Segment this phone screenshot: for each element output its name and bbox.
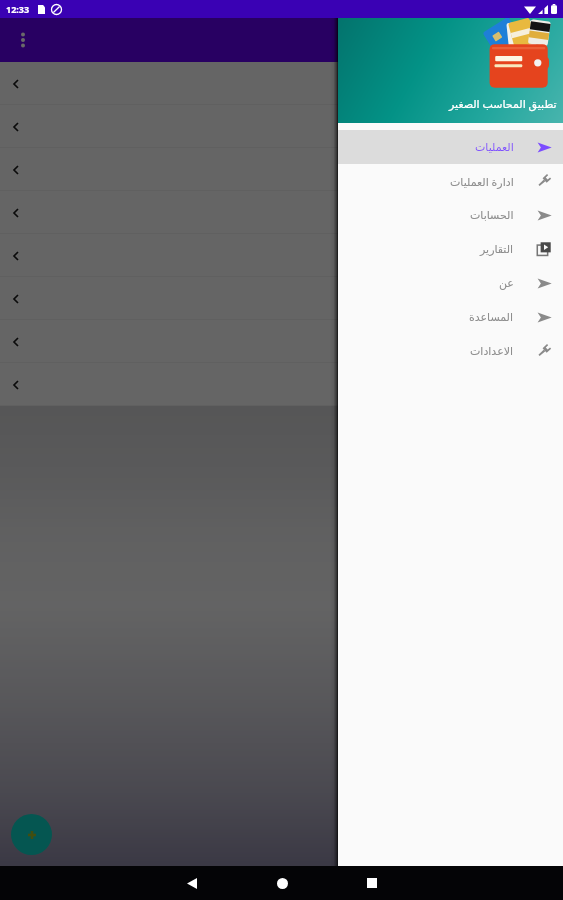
staticText: 12:33: [6, 3, 30, 15]
staticText: تطبيق المحاسب الصغير: [449, 96, 557, 111]
button[interactable]: [0, 277, 563, 320]
button[interactable]: [0, 363, 563, 406]
button[interactable]: [0, 320, 563, 363]
button[interactable]: الحسابات: [338, 198, 563, 232]
staticText: الاعدادات: [470, 345, 514, 358]
button[interactable]: Add: [11, 814, 52, 855]
button[interactable]: التقارير: [338, 232, 563, 266]
staticText: ادارة العمليات: [450, 174, 514, 189]
button[interactable]: عن: [338, 266, 563, 300]
button[interactable]: ادارة العمليات: [338, 164, 563, 198]
button[interactable]: Recents: [344, 866, 400, 900]
staticText: عن: [499, 277, 514, 290]
button[interactable]: [0, 234, 563, 277]
button[interactable]: العمليات: [338, 130, 563, 164]
staticText: الحسابات: [470, 209, 514, 222]
button[interactable]: [0, 191, 563, 234]
staticText: العمليات: [475, 141, 514, 154]
button[interactable]: [0, 148, 563, 191]
staticText: التقارير: [480, 243, 514, 256]
button[interactable]: الاعدادات: [338, 334, 563, 368]
button[interactable]: [0, 105, 563, 148]
button[interactable]: المساعدة: [338, 300, 563, 334]
button[interactable]: Back: [164, 866, 220, 900]
button[interactable]: More options: [8, 25, 38, 55]
staticText: المساعدة: [469, 311, 514, 324]
button[interactable]: Home: [254, 866, 310, 900]
button[interactable]: [0, 62, 563, 105]
